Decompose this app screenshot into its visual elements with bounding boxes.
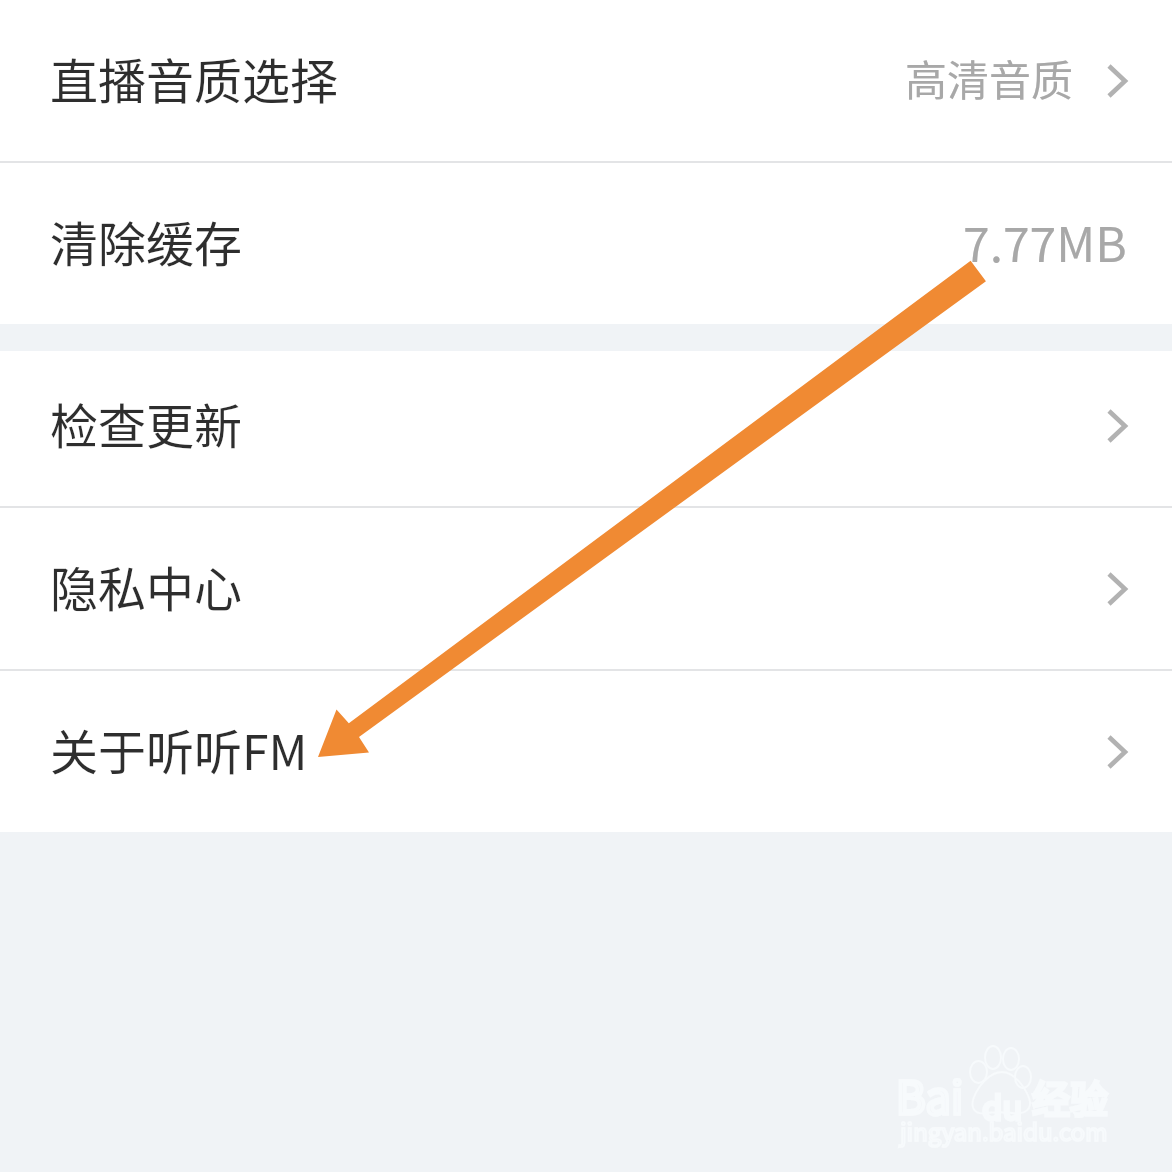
button[interactable]: 清除缓存 <box>0 163 1172 324</box>
other: Open 检查更新 <box>1107 409 1127 443</box>
staticText: 高清音质 <box>905 47 1074 108</box>
button[interactable]: 检查更新 <box>0 351 1172 506</box>
button[interactable]: 隐私中心 <box>0 508 1172 669</box>
staticText: du <box>982 1082 1023 1130</box>
button[interactable]: 关于听听FM <box>0 671 1172 832</box>
staticText: 隐私中心 <box>50 551 243 621</box>
other: Open 关于听听FM <box>1107 735 1127 769</box>
staticText: jingyan.baidu.com <box>900 1113 1108 1148</box>
staticText: 直播音质选择 <box>50 43 339 113</box>
button[interactable]: 直播音质选择 <box>0 0 1172 161</box>
staticText: 清除缓存 <box>50 206 243 276</box>
staticText: 7.77MB <box>963 206 1127 276</box>
other: Open 直播音质选择 <box>1107 64 1127 98</box>
staticText: 经验 <box>1032 1069 1109 1124</box>
staticText: 关于听听FM <box>50 714 308 784</box>
other: Open 隐私中心 <box>1107 572 1127 606</box>
staticText: Bai <box>896 1062 964 1127</box>
staticText: 检查更新 <box>50 388 243 458</box>
